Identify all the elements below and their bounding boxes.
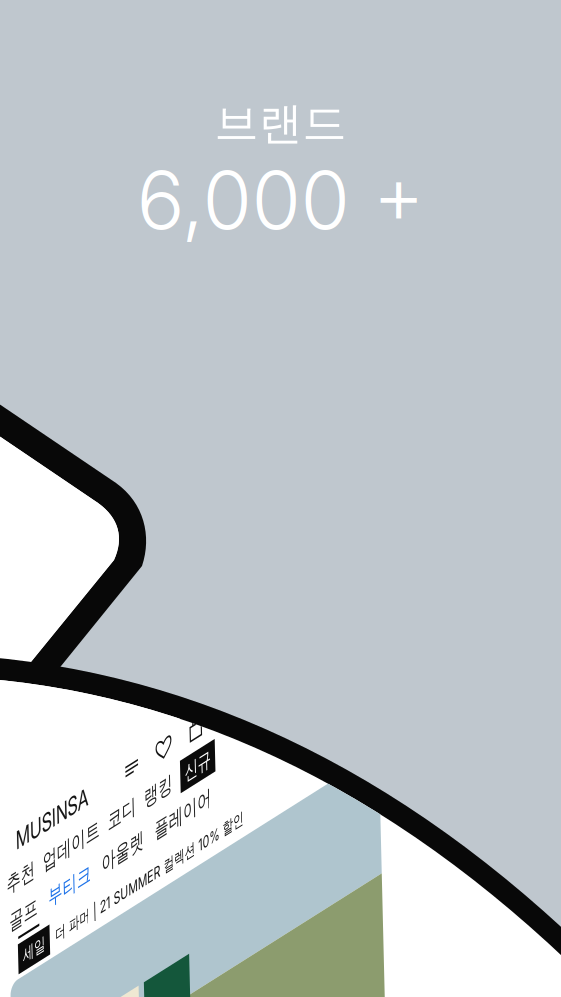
button[interactable]: 코디 (63, 540, 117, 574)
button[interactable]: 아울렛 (50, 587, 131, 621)
staticText: MUSINSA (89, 935, 227, 973)
button[interactable]: 업데이트 (138, 985, 246, 997)
staticText: 아울렛 (50, 587, 131, 621)
staticText: 더 파머 | 21 SUMMER 컬렉션 10% 할인 (0, 641, 318, 666)
button[interactable]: Likes (141, 493, 202, 524)
staticText: 랭킹 (132, 540, 186, 574)
staticText: 6,000 + (136, 151, 424, 248)
button[interactable]: 랭킹 (132, 540, 186, 574)
button[interactable]: 추천 (69, 985, 123, 997)
button[interactable]: Likes (339, 939, 400, 970)
staticText: 브랜드 (214, 96, 346, 151)
button[interactable]: Menu (81, 494, 141, 524)
staticText: 업데이트 (138, 985, 246, 997)
staticText: 추천 (69, 985, 123, 997)
staticText: 코디 (63, 540, 117, 574)
